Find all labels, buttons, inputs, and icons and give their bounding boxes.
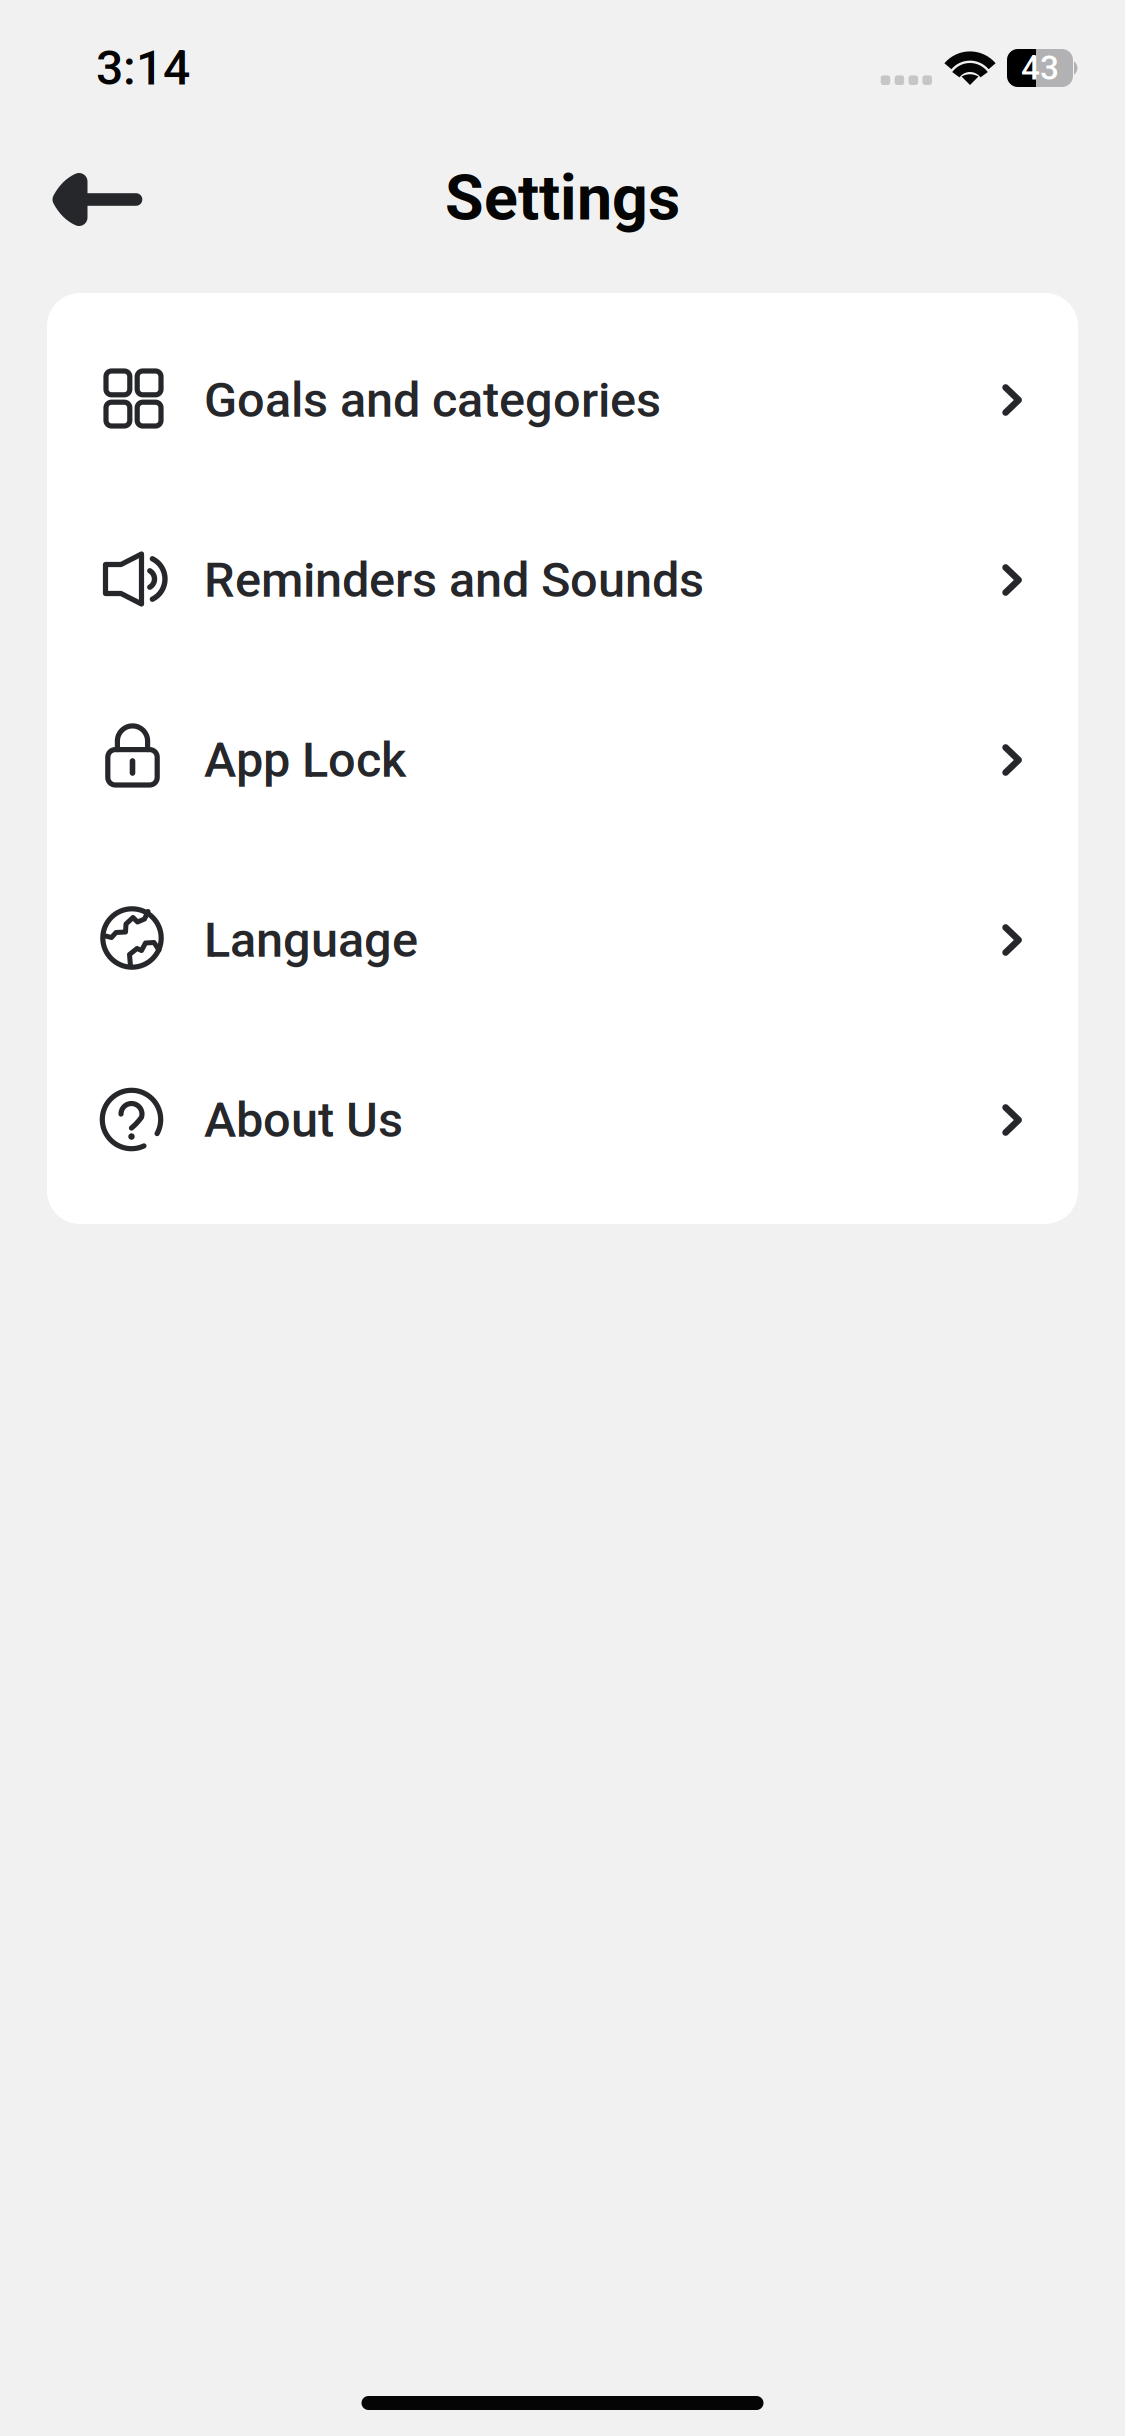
staticText: Reminders and Sounds — [204, 551, 704, 608]
button[interactable]: About Us — [47, 1030, 1078, 1210]
staticText: App Lock — [204, 731, 406, 788]
staticText: About Us — [204, 1091, 403, 1148]
button[interactable]: Reminders and Sounds — [47, 490, 1078, 670]
button[interactable]: Language — [47, 850, 1078, 1030]
staticText: 3:14 — [96, 40, 190, 96]
staticText: Language — [204, 911, 418, 968]
staticText: 43 — [1021, 48, 1059, 88]
button[interactable]: Back — [0, 159, 160, 247]
staticText: Settings — [445, 161, 680, 235]
staticText: Goals and categories — [204, 371, 661, 428]
button[interactable]: Goals and categories — [47, 310, 1078, 490]
button[interactable]: App Lock — [47, 670, 1078, 850]
